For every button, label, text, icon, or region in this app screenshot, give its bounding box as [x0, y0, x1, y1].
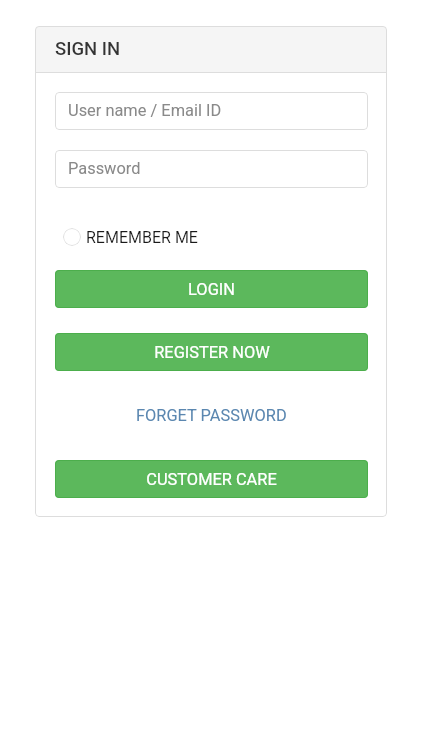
staticText: Password: [68, 159, 141, 178]
button[interactable]: Password: [55, 150, 368, 188]
staticText: REMEMBER ME: [86, 228, 198, 247]
button[interactable]: REMEMBER ME: [55, 218, 202, 255]
button[interactable]: User name / Email ID: [55, 92, 368, 130]
staticText: CUSTOMER CARE: [146, 470, 277, 489]
button[interactable]: FORGET PASSWORD: [55, 401, 368, 429]
staticText: REGISTER NOW: [154, 343, 270, 362]
staticText: SIGN IN: [55, 38, 121, 60]
button[interactable]: LOGIN: [55, 270, 368, 308]
staticText: FORGET PASSWORD: [136, 406, 287, 425]
staticText: User name / Email ID: [68, 101, 222, 120]
button[interactable]: CUSTOMER CARE: [55, 460, 368, 498]
staticText: LOGIN: [188, 280, 235, 299]
button[interactable]: REGISTER NOW: [55, 333, 368, 371]
